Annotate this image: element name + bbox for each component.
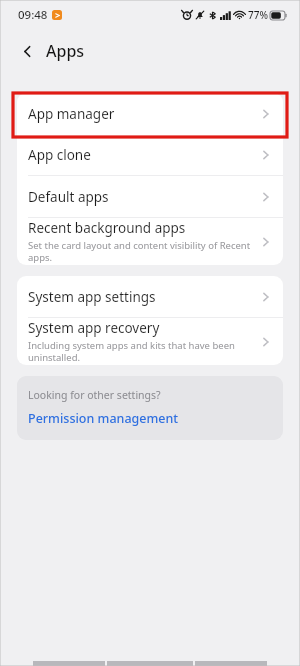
staticText: Default apps (28, 188, 109, 206)
staticText: App manager (28, 105, 115, 123)
button[interactable]: System app recovery (17, 318, 283, 365)
staticText: System app recovery (28, 319, 160, 337)
button[interactable]: Recent background apps (17, 218, 283, 265)
button[interactable]: System app settings (17, 276, 283, 317)
staticText: Recent background apps (28, 219, 186, 237)
button[interactable]: Permission management (28, 410, 179, 427)
button[interactable]: Back (14, 38, 40, 64)
staticText: System app settings (28, 288, 156, 306)
button[interactable]: App clone (17, 134, 283, 175)
staticText: Set the card layout and content visibili… (28, 239, 251, 264)
staticText: 09:48 (18, 7, 48, 23)
staticText: App clone (28, 146, 91, 164)
button[interactable]: App manager (17, 93, 283, 134)
button[interactable]: Default apps (17, 176, 283, 217)
staticText: Including system apps and kits that have… (28, 339, 235, 364)
staticText: 77% (248, 8, 268, 22)
staticText: Permission management (28, 410, 179, 427)
staticText: Apps (46, 40, 85, 62)
staticText: Looking for other settings? (28, 388, 161, 402)
